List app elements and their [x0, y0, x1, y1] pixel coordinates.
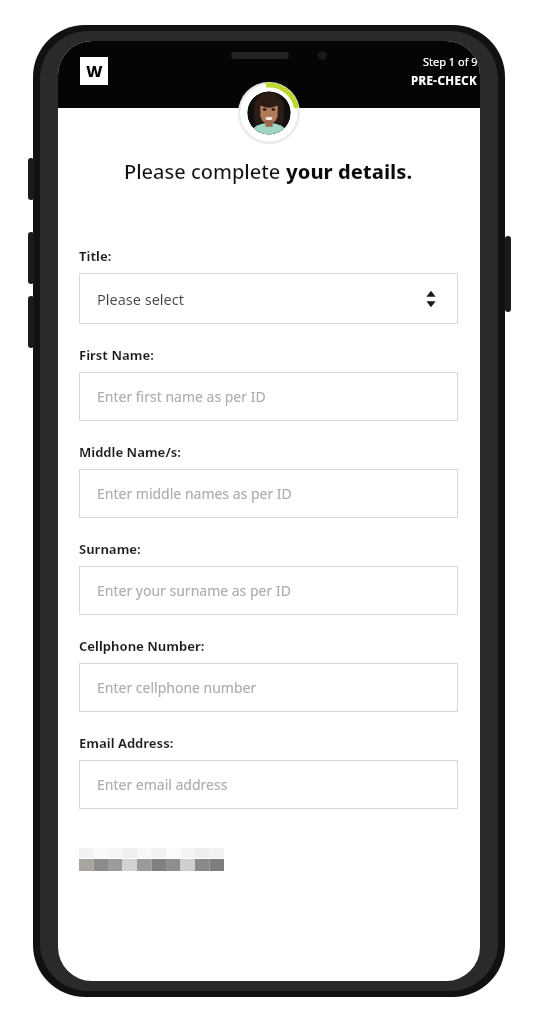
staticText: Please select: [97, 289, 184, 309]
staticText: Title:: [79, 247, 112, 265]
button[interactable]: Enter your surname as per ID: [79, 566, 458, 615]
staticText: Middle Name/s:: [79, 443, 181, 461]
staticText: First Name:: [79, 346, 154, 364]
button[interactable]: Enter email address: [79, 760, 458, 809]
staticText: Step 1 of 9: [423, 54, 478, 69]
button[interactable]: Woolworths home: [80, 57, 108, 85]
staticText: Surname:: [79, 540, 141, 558]
staticText: Enter your surname as per ID: [97, 581, 291, 600]
button[interactable]: Enter cellphone number: [79, 663, 458, 712]
button[interactable]: Enter middle names as per ID: [79, 469, 458, 518]
staticText: Enter email address: [97, 775, 228, 794]
staticText: W: [86, 60, 103, 82]
button[interactable]: Enter first name as per ID: [79, 372, 458, 421]
staticText: Email Address:: [79, 734, 174, 752]
staticText: Enter first name as per ID: [97, 387, 266, 406]
button[interactable]: Profile photo: [238, 82, 300, 144]
staticText: Cellphone Number:: [79, 637, 205, 655]
staticText: Please complete: [124, 158, 286, 185]
staticText: Enter cellphone number: [97, 678, 257, 697]
staticText: PRE-CHECK: [411, 73, 478, 89]
button[interactable]: Please select: [79, 273, 458, 324]
staticText: your details.: [286, 158, 413, 185]
staticText: Enter middle names as per ID: [97, 484, 292, 503]
